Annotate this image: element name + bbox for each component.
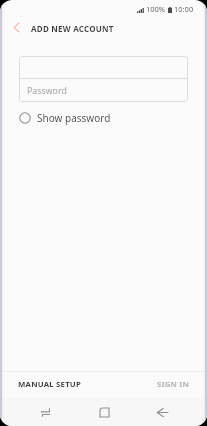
button[interactable]: Recent apps [16, 398, 75, 426]
button[interactable] [19, 56, 188, 78]
staticText: 10:00 [174, 4, 194, 14]
button[interactable]: Home [75, 398, 133, 426]
button[interactable]: SIGN IN [103, 372, 207, 398]
staticText: ADD NEW ACCOUNT [31, 23, 114, 34]
button[interactable]: Show password [19, 111, 111, 125]
button[interactable]: Back [7, 18, 26, 37]
button[interactable]: MANUAL SETUP [0, 372, 103, 398]
button[interactable]: Back [133, 398, 191, 426]
staticText: 100% [146, 4, 166, 14]
button[interactable]: Password [19, 79, 188, 102]
staticText: Show password [37, 111, 111, 125]
staticText: MANUAL SETUP [18, 379, 81, 390]
staticText: SIGN IN [157, 379, 190, 390]
staticText: Password [27, 85, 67, 97]
